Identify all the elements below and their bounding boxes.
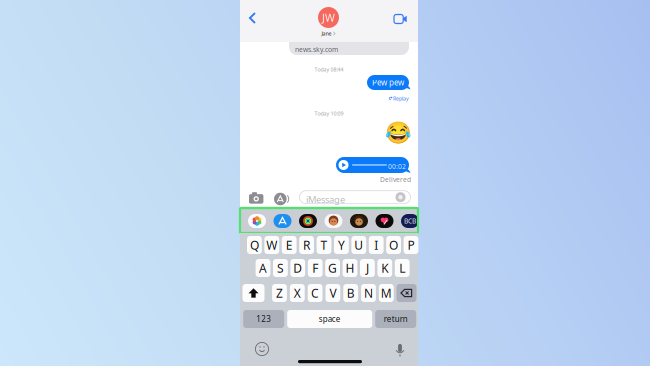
button[interactable]: Fitness <box>299 214 317 228</box>
button[interactable]: space <box>287 310 372 328</box>
staticText: space <box>319 314 341 324</box>
button[interactable]: M <box>379 284 394 302</box>
button[interactable]: I <box>369 236 384 254</box>
staticText: G <box>328 260 337 276</box>
staticText: news.sky.com <box>295 45 338 54</box>
button[interactable]: O <box>386 236 401 254</box>
staticText: N <box>364 285 373 301</box>
button[interactable]: 123 <box>243 310 284 328</box>
staticText: M <box>381 285 392 301</box>
button[interactable]: R <box>299 236 314 254</box>
button[interactable]: return <box>375 310 416 328</box>
button[interactable]: B <box>343 284 358 302</box>
staticText: 00:02 <box>388 162 406 171</box>
button[interactable]: T <box>317 236 331 254</box>
button[interactable]: Memoji <box>324 214 342 228</box>
staticText: D <box>293 260 302 276</box>
button[interactable]: J <box>360 259 375 277</box>
staticText: I <box>374 237 378 253</box>
staticText: Jane <box>321 30 331 37</box>
staticText: T <box>320 237 327 253</box>
button[interactable]: App Store <box>273 214 291 228</box>
staticText: J <box>366 260 369 276</box>
button[interactable]: S <box>273 259 288 277</box>
staticText: JW <box>322 10 335 25</box>
button[interactable]: Stickers <box>395 192 405 202</box>
staticText: Q <box>250 237 259 253</box>
button[interactable]: X <box>290 284 305 302</box>
button[interactable]: U <box>351 236 366 254</box>
button[interactable]: FaceTime <box>388 8 413 30</box>
button[interactable]: Delete <box>396 284 416 302</box>
button[interactable]: Health <box>375 214 393 228</box>
staticText: Replay <box>393 95 409 102</box>
staticText: Today 08:44 <box>314 66 343 73</box>
button[interactable]: Emoji keyboard <box>251 338 273 360</box>
staticText: Y <box>338 237 345 253</box>
button[interactable]: W <box>264 236 279 254</box>
staticText: return <box>384 314 408 324</box>
button[interactable]: Replay <box>366 95 409 102</box>
staticText: K <box>381 260 388 276</box>
button[interactable]: Q <box>247 236 262 254</box>
button[interactable]: E <box>282 236 297 254</box>
button[interactable]: Back <box>243 7 262 29</box>
staticText: F <box>312 260 318 276</box>
button[interactable]: Photos <box>248 214 266 228</box>
staticText: A <box>259 260 267 276</box>
staticText: iMessage <box>306 193 345 205</box>
staticText: Today 10:09 <box>314 110 343 117</box>
staticText: E <box>286 237 293 253</box>
staticText: P <box>407 237 414 253</box>
staticText: Delivered <box>380 175 411 184</box>
staticText: O <box>389 237 398 253</box>
staticText: S <box>277 260 284 276</box>
staticText: L <box>399 260 405 276</box>
staticText: B <box>347 285 355 301</box>
staticText: V <box>329 285 336 301</box>
button[interactable]: Y <box>334 236 349 254</box>
button[interactable]: N <box>361 284 376 302</box>
button[interactable]: D <box>290 259 305 277</box>
button[interactable]: JW <box>305 7 351 37</box>
button[interactable]: Dictation <box>390 337 410 359</box>
button[interactable]: A <box>256 259 270 277</box>
button[interactable]: H <box>343 259 357 277</box>
button[interactable]: G <box>325 259 340 277</box>
button[interactable]: L <box>395 259 410 277</box>
button[interactable]: Shift <box>242 284 264 302</box>
staticText: R <box>303 237 310 253</box>
button[interactable]: Memoji <box>350 214 368 228</box>
button[interactable]: K <box>377 259 392 277</box>
staticText: Pew pew <box>372 77 404 88</box>
staticText: X <box>294 285 301 301</box>
button[interactable]: App <box>401 214 419 228</box>
staticText: C <box>311 285 319 301</box>
staticText: H <box>345 260 354 276</box>
staticText: W <box>266 237 277 253</box>
button[interactable]: Camera <box>245 188 267 208</box>
staticText: BCB <box>404 217 416 225</box>
button[interactable]: C <box>308 284 322 302</box>
staticText: 😂 <box>385 121 412 145</box>
staticText: U <box>354 237 363 253</box>
staticText: Z <box>276 285 283 301</box>
button[interactable]: Apps <box>270 189 291 209</box>
button[interactable]: F <box>308 259 323 277</box>
button[interactable]: V <box>325 284 340 302</box>
button[interactable]: Z <box>272 284 287 302</box>
button[interactable]: P <box>404 236 418 254</box>
staticText: 123 <box>256 314 271 324</box>
